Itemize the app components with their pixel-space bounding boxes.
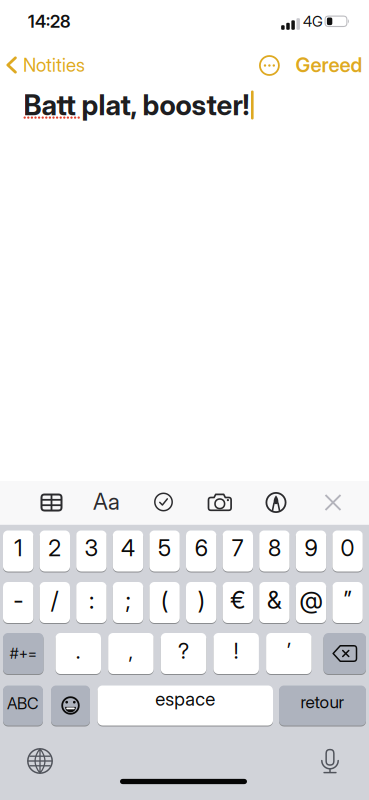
button[interactable]: , [108, 632, 154, 674]
button[interactable]: Camera [207, 493, 231, 511]
staticText: / [51, 586, 59, 614]
button[interactable]: espace [97, 685, 273, 726]
staticText: : [89, 586, 94, 614]
staticText: 5 [158, 535, 171, 561]
staticText: espace [155, 688, 215, 710]
staticText: ! [234, 638, 239, 664]
button[interactable]: 3 [76, 530, 107, 572]
button[interactable]: & [259, 581, 290, 623]
staticText: Notities [23, 54, 85, 76]
staticText: ” [344, 586, 352, 614]
button[interactable]: #+= [3, 632, 43, 674]
staticText: & [267, 586, 282, 614]
staticText: 7 [232, 535, 244, 561]
staticText: ? [178, 638, 189, 664]
staticText: retour [300, 692, 344, 712]
button[interactable]: Emoji [51, 685, 90, 726]
staticText: Batt plat, booster! [23, 88, 249, 121]
button[interactable]: ” [332, 581, 363, 623]
button[interactable]: € [223, 581, 253, 623]
button[interactable]: 7 [223, 530, 253, 572]
button[interactable]: ( [149, 581, 180, 623]
staticText: 4 [121, 535, 135, 561]
button[interactable]: 6 [186, 530, 216, 572]
staticText: 1 [14, 535, 22, 561]
button[interactable]: 5 [149, 530, 180, 572]
button[interactable]: Back [6, 54, 85, 76]
button[interactable]: 2 [40, 530, 70, 572]
button[interactable]: / [40, 581, 70, 623]
button[interactable]: 1 [3, 530, 33, 572]
staticText: - [13, 586, 23, 614]
button[interactable]: Insert table [40, 493, 62, 511]
staticText: ( [161, 586, 168, 614]
button[interactable]: Dismiss keyboard [324, 494, 341, 511]
button[interactable]: Formatting [93, 488, 120, 515]
staticText: 9 [304, 535, 317, 561]
staticText: . [76, 638, 81, 664]
button[interactable]: Markup [265, 492, 286, 513]
staticText: 4G [303, 13, 323, 30]
staticText: @ [299, 586, 322, 614]
button[interactable]: 9 [296, 530, 326, 572]
staticText: 14:28 [28, 11, 70, 32]
button[interactable]: 4 [113, 530, 143, 572]
staticText: ABC [7, 694, 39, 713]
staticText: ; [125, 586, 130, 614]
button[interactable]: ! [213, 632, 259, 674]
button[interactable]: Gereed [242, 54, 362, 76]
staticText: 8 [268, 535, 281, 561]
button[interactable]: More [259, 55, 279, 75]
button[interactable]: ; [113, 581, 143, 623]
staticText: 3 [84, 535, 98, 561]
button[interactable]: Delete [323, 632, 366, 674]
button[interactable]: retour [279, 685, 366, 726]
staticText: ’ [287, 638, 291, 664]
staticText: , [128, 638, 133, 664]
staticText: #+= [10, 645, 37, 662]
button[interactable]: : [76, 581, 107, 623]
button[interactable]: ) [186, 581, 216, 623]
staticText: 6 [195, 535, 208, 561]
staticText: € [230, 586, 245, 614]
button[interactable]: - [3, 581, 33, 623]
staticText: 2 [48, 535, 61, 561]
button[interactable]: . [55, 632, 101, 674]
button[interactable]: ’ [266, 632, 312, 674]
staticText: 0 [341, 535, 355, 561]
button[interactable]: Checklist [154, 492, 173, 511]
button[interactable]: 8 [259, 530, 290, 572]
button[interactable]: Next keyboard [27, 748, 53, 774]
staticText: ) [198, 586, 205, 614]
button[interactable]: @ [296, 581, 326, 623]
button[interactable]: Dictation [319, 748, 340, 774]
staticText: Aa [93, 488, 120, 515]
button[interactable]: ? [161, 632, 206, 674]
staticText: Gereed [295, 53, 362, 77]
button[interactable]: ABC [3, 685, 43, 726]
button[interactable]: 0 [332, 530, 363, 572]
